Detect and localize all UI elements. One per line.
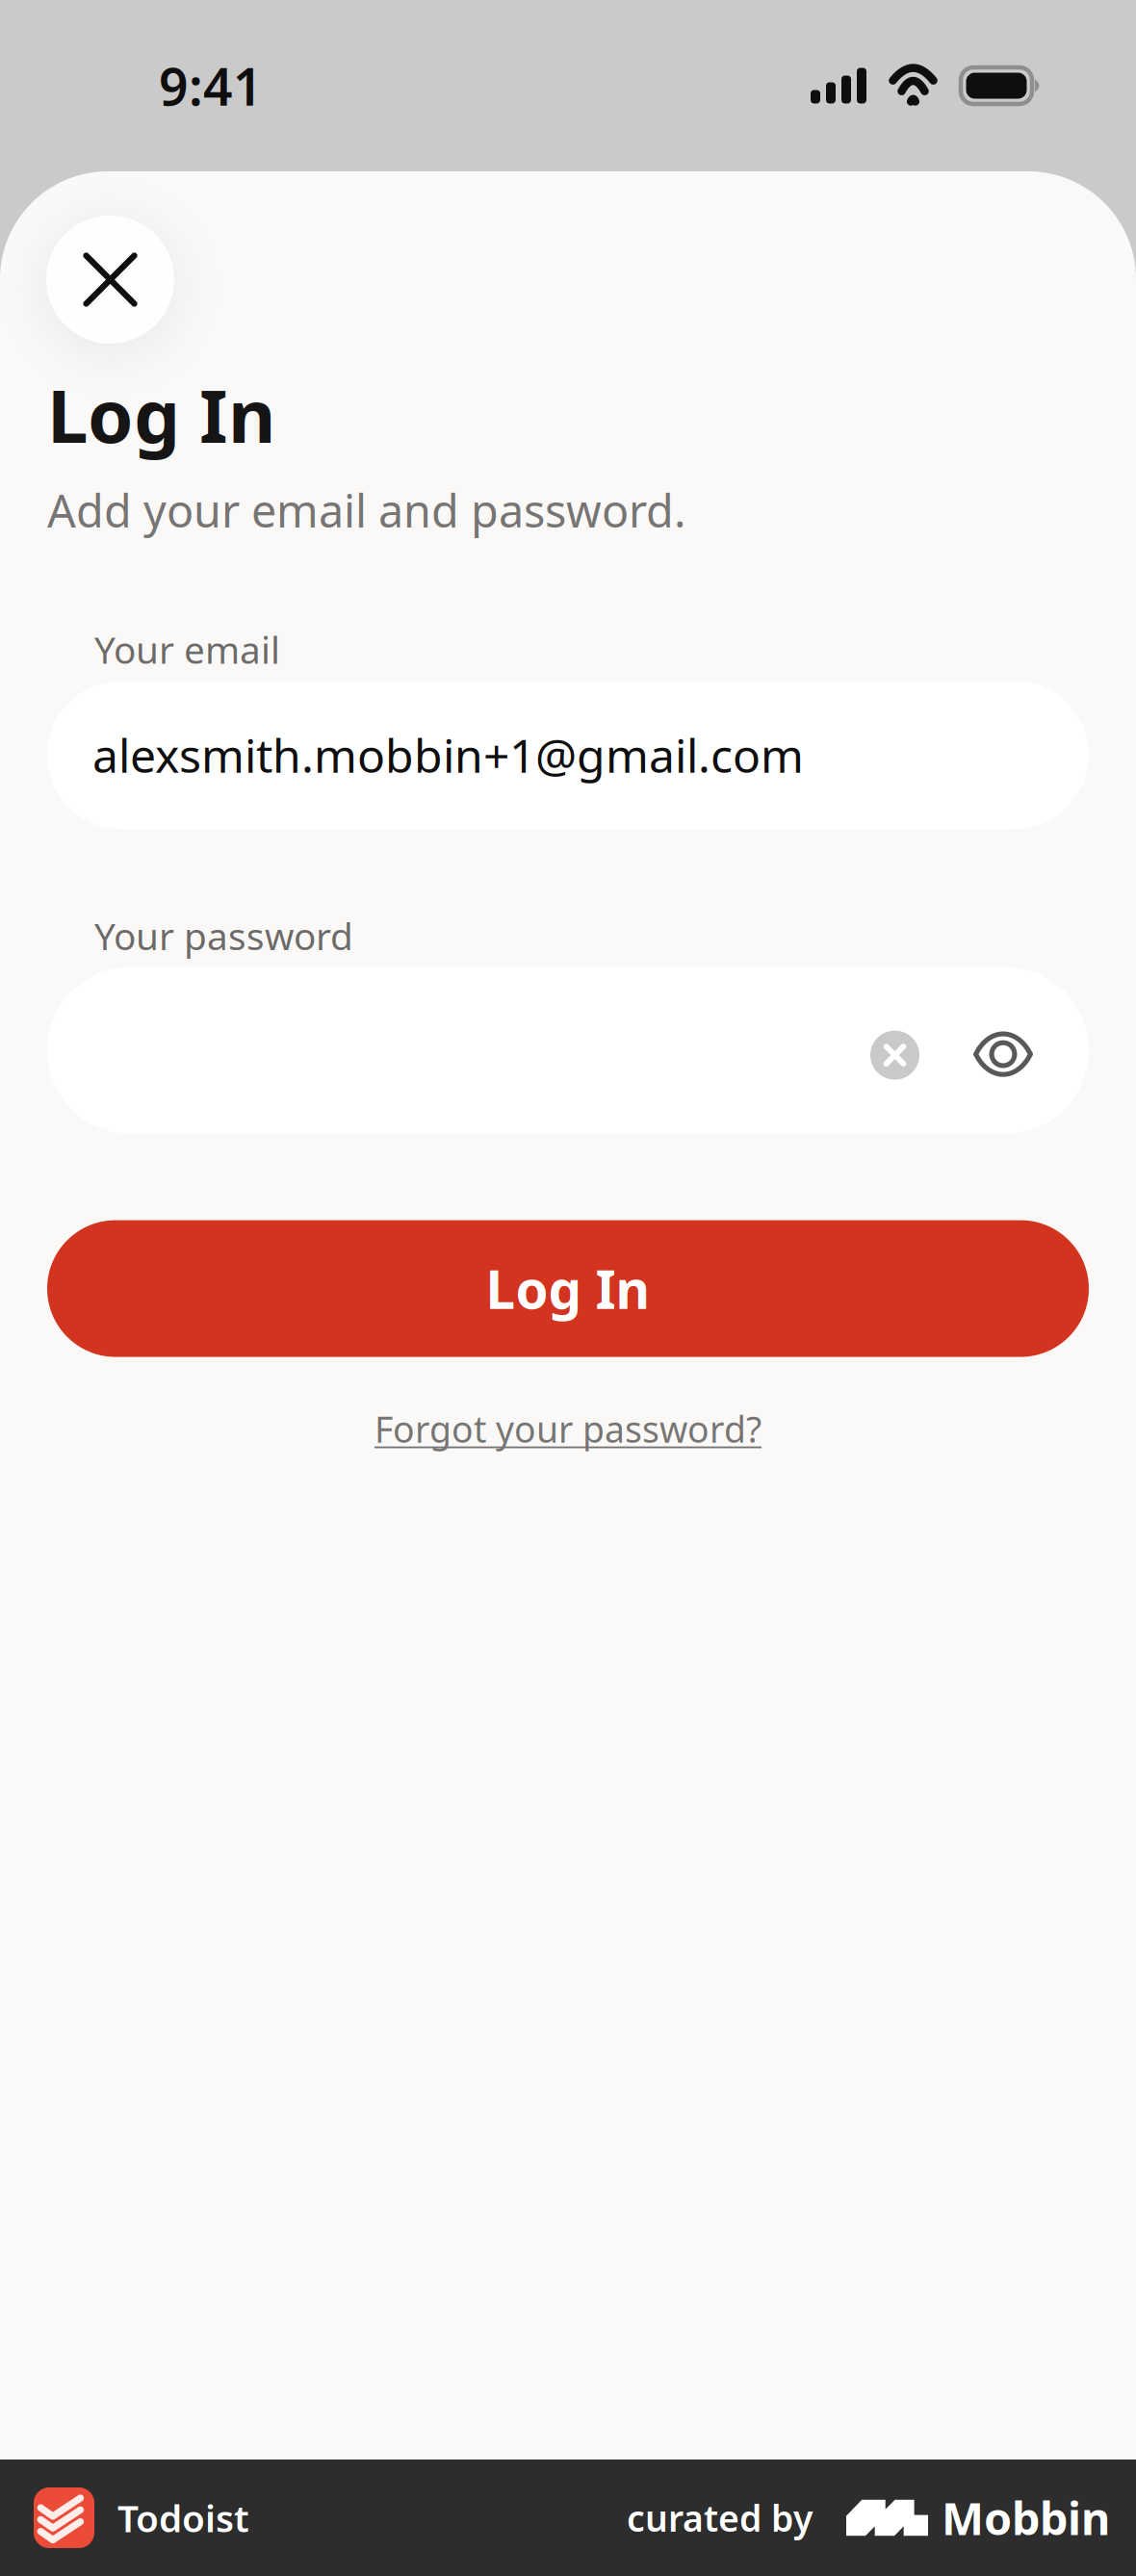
staticText: Todoist (117, 2493, 249, 2542)
staticText: Log In (486, 1254, 650, 1324)
button[interactable]: Clear password (870, 1031, 919, 1080)
staticText: curated by (627, 2494, 813, 2542)
staticText: Add your email and password. (47, 480, 686, 540)
button[interactable]: Log In (47, 1220, 1089, 1357)
staticText: alexsmith.mobbin+1@gmail.com (92, 724, 804, 786)
button[interactable]: Show password (973, 1032, 1033, 1077)
staticText: Mobbin (942, 2488, 1110, 2548)
staticText: 9:41 (159, 52, 263, 120)
button[interactable]: Close (46, 216, 174, 344)
staticText: Your email (94, 625, 280, 674)
staticText: Log In (47, 366, 275, 463)
staticText: Forgot your password? (374, 1405, 762, 1453)
button[interactable]: Forgot your password? (359, 1395, 777, 1462)
staticText: Your password (94, 911, 353, 960)
